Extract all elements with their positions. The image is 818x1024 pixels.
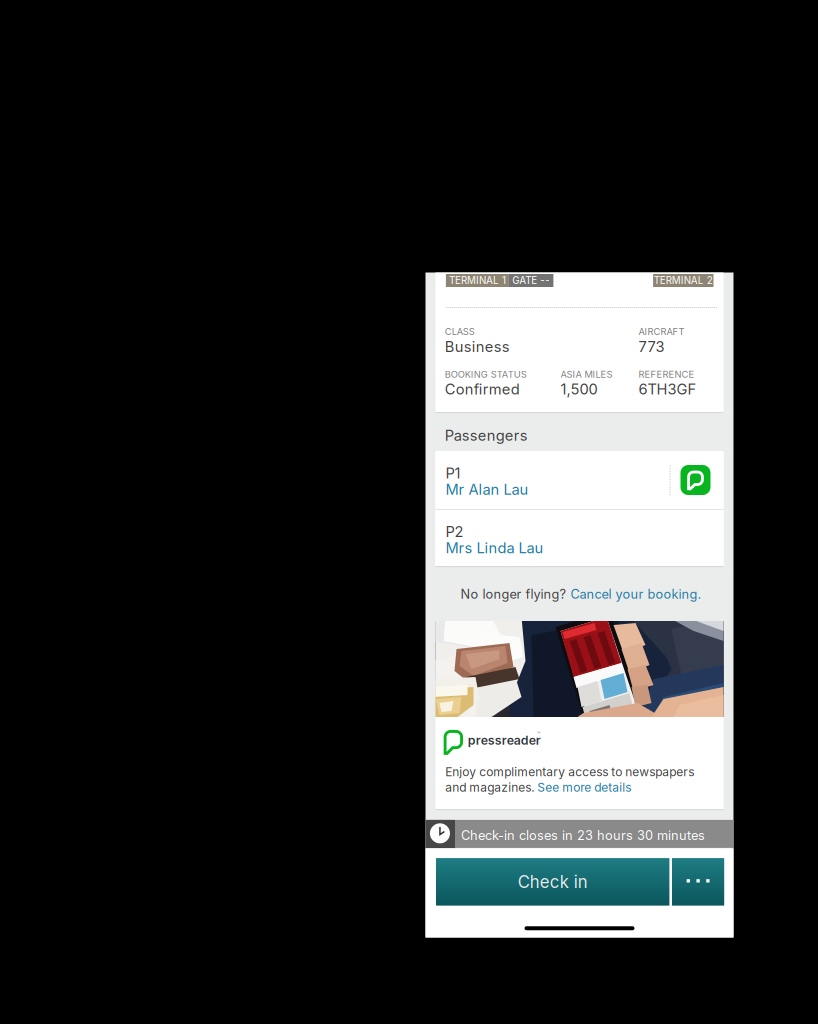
- staticText: Mr Alan Lau: [445, 480, 528, 498]
- staticText: P1: [445, 464, 460, 482]
- staticText: 6TH3GF: [638, 380, 696, 398]
- staticText: Confirmed: [445, 380, 520, 398]
- staticText: Passengers: [445, 426, 528, 444]
- staticText: BOOKING STATUS: [445, 369, 527, 380]
- staticText: AIRCRAFT: [638, 326, 684, 337]
- staticText: ASIA MILES: [560, 369, 612, 380]
- staticText: Mrs Linda Lau: [445, 539, 543, 557]
- staticText: 773: [638, 338, 664, 355]
- staticText: TERMINAL 1: [449, 275, 506, 286]
- staticText: Enjoy complimentary access to newspapers: [445, 765, 694, 779]
- staticText: TERMINAL 2: [654, 275, 713, 286]
- button[interactable]: No longer flying?: [460, 586, 701, 602]
- button[interactable]: Check in: [436, 858, 669, 906]
- staticText: pressreader: [468, 733, 541, 748]
- staticText: No longer flying?: [460, 586, 570, 602]
- staticText: ™: [537, 730, 540, 737]
- staticText: Cancel your booking.: [570, 586, 701, 602]
- staticText: Business: [445, 338, 510, 355]
- staticText: Check-in closes in 23 hours 30 minutes: [461, 827, 705, 843]
- staticText: Check in: [518, 872, 588, 892]
- staticText: P2: [445, 523, 463, 540]
- button[interactable]: See more details: [537, 780, 631, 794]
- button[interactable]: P1: [435, 451, 723, 509]
- staticText: REFERENCE: [638, 369, 694, 380]
- staticText: CLASS: [445, 326, 475, 337]
- staticText: and magazines.: [445, 780, 537, 794]
- staticText: GATE --: [512, 275, 550, 286]
- staticText: 1,500: [560, 380, 597, 398]
- button[interactable]: More options: [672, 858, 724, 906]
- staticText: See more details: [537, 780, 631, 794]
- button[interactable]: P2: [435, 510, 723, 566]
